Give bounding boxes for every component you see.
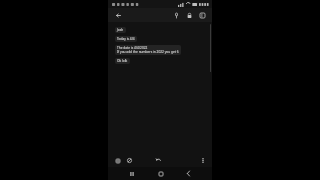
staticText: Josh xyxy=(117,28,124,32)
button[interactable]: Lock xyxy=(184,10,194,20)
button[interactable]: Pin xyxy=(171,10,181,20)
staticText: Today is 4/4 xyxy=(117,37,135,41)
staticText: The date is 4/4/2022 xyxy=(117,46,148,50)
button[interactable]: Josh xyxy=(115,27,126,33)
button[interactable]: More options xyxy=(198,156,207,165)
button[interactable]: Today is 4/4 xyxy=(115,36,137,42)
staticText: Ok lolk xyxy=(117,59,128,63)
button[interactable]: Reply xyxy=(154,156,163,165)
button[interactable]: Block xyxy=(125,156,134,165)
button[interactable]: Ok lolk xyxy=(115,58,130,64)
button[interactable]: Apps xyxy=(113,156,122,165)
button[interactable]: Home xyxy=(155,168,166,179)
button[interactable]: Recent apps xyxy=(126,168,137,179)
button[interactable]: Back xyxy=(113,10,123,20)
button[interactable]: Back xyxy=(183,168,194,179)
staticText: If you add the numbers in 2022 you get 6 xyxy=(117,50,179,54)
button[interactable]: The date is 4/4/2022 xyxy=(115,45,181,55)
button[interactable]: Options xyxy=(197,10,207,20)
